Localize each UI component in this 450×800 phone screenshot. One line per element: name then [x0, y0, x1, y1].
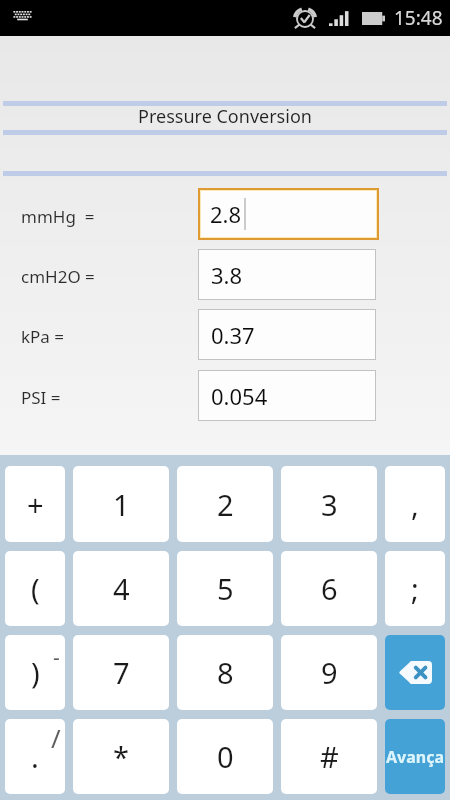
staticText: +: [27, 485, 44, 524]
button[interactable]: #: [281, 719, 377, 794]
staticText: *: [113, 737, 129, 776]
staticText: PSI =: [21, 386, 61, 409]
staticText: ): [31, 653, 40, 692]
button[interactable]: 6: [281, 551, 377, 626]
button[interactable]: 0: [177, 719, 273, 794]
button[interactable]: 3: [281, 466, 377, 542]
staticText: mmHg =: [21, 205, 95, 228]
button[interactable]: ,: [385, 466, 445, 542]
staticText: kPa =: [21, 325, 65, 348]
button[interactable]: 7: [73, 635, 169, 710]
staticText: 3: [321, 485, 338, 524]
staticText: 8: [217, 653, 234, 692]
button[interactable]: (: [5, 551, 65, 626]
staticText: 0.37: [211, 320, 255, 350]
staticText: 2.8: [210, 199, 242, 229]
staticText: ,: [411, 485, 419, 524]
staticText: 6: [321, 569, 338, 608]
staticText: cmH2O =: [21, 265, 95, 288]
staticText: #: [320, 737, 339, 776]
staticText: Pressure Conversion: [0, 104, 450, 129]
button[interactable]: Backspace: [385, 635, 445, 710]
button[interactable]: ;: [385, 551, 445, 626]
button[interactable]: 4: [73, 551, 169, 626]
button[interactable]: 0.37: [199, 310, 375, 359]
button[interactable]: Avançar: [385, 719, 445, 794]
button[interactable]: *: [73, 719, 169, 794]
button[interactable]: ): [5, 635, 65, 710]
button[interactable]: 2.8: [201, 191, 376, 237]
button[interactable]: +: [5, 466, 65, 542]
staticText: 1: [113, 485, 130, 524]
staticText: ;: [411, 569, 419, 608]
staticText: 4: [113, 569, 130, 608]
button[interactable]: 1: [73, 466, 169, 542]
staticText: 15:48: [394, 5, 443, 31]
staticText: 0.054: [211, 381, 268, 411]
staticText: 7: [113, 653, 130, 692]
staticText: 2: [217, 485, 234, 524]
staticText: 9: [321, 653, 338, 692]
button[interactable]: .: [5, 719, 65, 794]
staticText: (: [31, 569, 40, 608]
button[interactable]: 3.8: [199, 250, 375, 299]
staticText: 5: [217, 569, 234, 608]
staticText: 0: [217, 737, 234, 776]
button[interactable]: 2: [177, 466, 273, 542]
button[interactable]: 0.054: [199, 371, 375, 420]
button[interactable]: 9: [281, 635, 377, 710]
staticText: Avançar: [386, 746, 445, 768]
staticText: 3.8: [211, 260, 243, 290]
staticText: /: [51, 720, 61, 755]
button[interactable]: 5: [177, 551, 273, 626]
staticText: -: [53, 643, 60, 672]
staticText: .: [31, 737, 39, 776]
button[interactable]: 8: [177, 635, 273, 710]
